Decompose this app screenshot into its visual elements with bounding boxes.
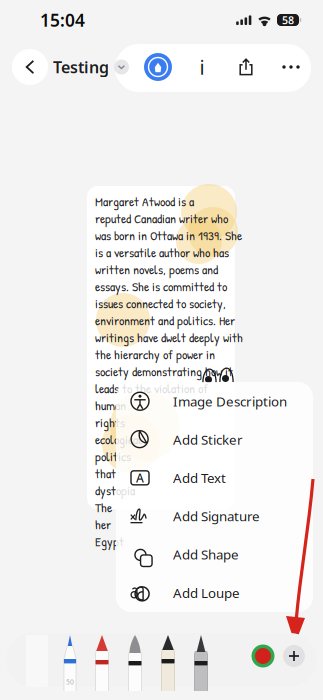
button[interactable]: Add Signature xyxy=(116,497,313,535)
staticText: society demonstrating how it xyxy=(95,362,233,381)
staticText: her xyxy=(95,515,111,534)
staticText: issues connected to society, xyxy=(95,294,226,313)
staticText: Add Loupe xyxy=(173,584,240,602)
button[interactable]: Marker xyxy=(95,635,109,691)
button[interactable]: Add Loupe xyxy=(116,574,313,612)
button[interactable]: Pencil xyxy=(194,635,208,691)
staticText: Add Signature xyxy=(173,507,260,525)
staticText: ecological xyxy=(95,430,142,449)
staticText: writings have dwelt deeply with xyxy=(95,328,243,347)
button[interactable]: Highlighter xyxy=(161,635,175,691)
staticText: environment and politics. Her xyxy=(95,311,235,330)
staticText: was born in Ottawa in 1939. She xyxy=(95,226,242,245)
staticText: Add Shape xyxy=(173,546,239,563)
staticText: essays. She is committed to xyxy=(95,277,227,296)
button[interactable]: Image Description xyxy=(116,382,313,420)
button[interactable]: Pen xyxy=(63,635,77,691)
staticText: the hierarchy of power in xyxy=(95,345,215,364)
button[interactable]: Share xyxy=(231,51,261,83)
staticText: i xyxy=(199,54,204,80)
staticText: dystopia xyxy=(95,481,135,500)
button[interactable]: Markup xyxy=(143,52,173,82)
staticText: Margaret Atwood is a xyxy=(95,192,194,211)
staticText: that xyxy=(95,464,116,483)
button[interactable]: More xyxy=(276,51,306,83)
button[interactable]: Add tool xyxy=(282,644,306,668)
button[interactable]: Add Sticker xyxy=(116,420,313,459)
button[interactable]: Back xyxy=(12,49,48,85)
staticText: The xyxy=(95,498,112,517)
staticText: politics xyxy=(95,447,131,466)
staticText: rights xyxy=(95,413,125,432)
staticText: Egypt xyxy=(95,532,124,551)
staticText: written novels, poems and xyxy=(95,260,218,279)
staticText: is a versatile author who has xyxy=(95,243,229,262)
staticText: leads to the violation of xyxy=(95,379,208,398)
staticText: Testing xyxy=(53,56,109,78)
button[interactable]: Color xyxy=(251,644,275,668)
staticText: Add Text xyxy=(173,469,226,487)
staticText: Image Description xyxy=(173,392,287,410)
staticText: 15:04 xyxy=(40,8,85,31)
staticText: 58 xyxy=(282,13,294,27)
button[interactable]: Info xyxy=(187,51,217,83)
staticText: human xyxy=(95,396,126,415)
button[interactable]: Add Shape xyxy=(116,535,313,574)
staticText: reputed Canadian writer who xyxy=(95,209,228,228)
staticText: A xyxy=(136,470,144,486)
button[interactable]: Fountain pen xyxy=(128,635,142,691)
button[interactable]: A xyxy=(116,459,313,497)
button[interactable]: Testing xyxy=(47,50,135,84)
staticText: Add Sticker xyxy=(173,431,243,448)
staticText: 50 xyxy=(66,678,74,686)
